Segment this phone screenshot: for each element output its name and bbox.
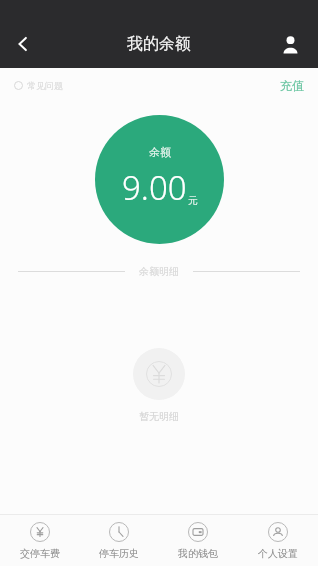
button[interactable]: 停车历史 — [79, 515, 158, 566]
staticText: 常见问题 — [27, 80, 63, 91]
staticText: 个人设置 — [258, 547, 298, 560]
staticText: 余额 — [149, 145, 171, 159]
staticText: 停车历史 — [99, 547, 139, 560]
staticText: 我的钱包 — [178, 547, 218, 560]
button[interactable]: 个人设置 — [238, 515, 318, 566]
button[interactable]: 交停车费 — [0, 515, 79, 566]
button[interactable]: Profile — [268, 22, 312, 66]
staticText: 暂无明细 — [139, 410, 179, 423]
staticText: 交停车费 — [20, 547, 60, 560]
button[interactable]: 我的钱包 — [158, 515, 238, 566]
button[interactable]: 常见问题 — [14, 80, 63, 91]
button[interactable]: Back — [0, 21, 46, 67]
staticText: 9.00 — [122, 165, 187, 210]
staticText: 余额明细 — [139, 265, 179, 278]
staticText: 元 — [188, 194, 198, 207]
staticText: 充值 — [280, 78, 304, 93]
button[interactable]: 充值 — [280, 78, 304, 93]
button[interactable]: 余额 — [95, 115, 224, 244]
staticText: 我的余额 — [127, 34, 191, 54]
